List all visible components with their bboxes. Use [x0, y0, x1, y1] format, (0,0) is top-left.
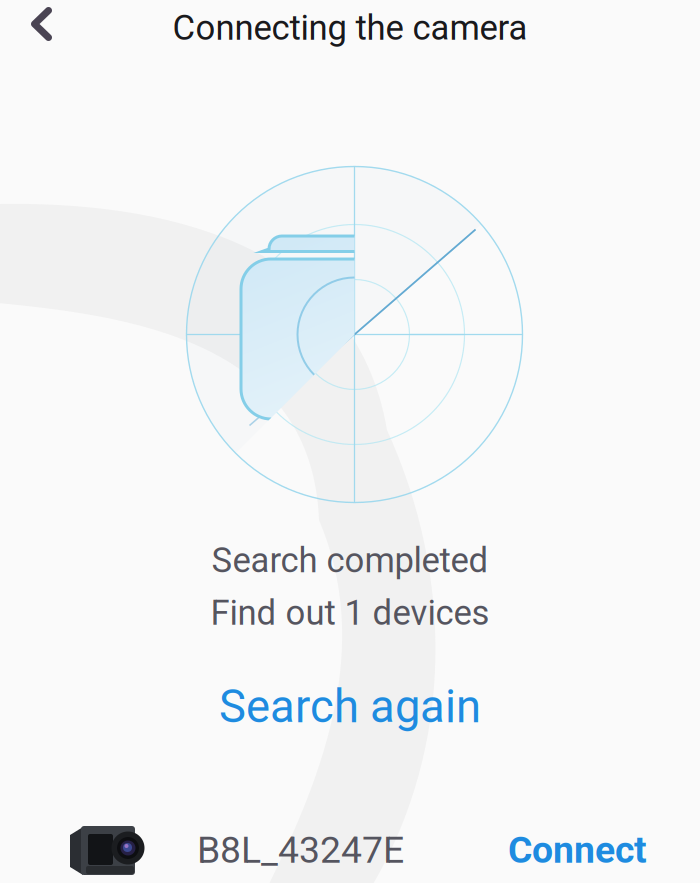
staticText: Connecting the camera [172, 8, 527, 48]
button[interactable]: Search again [195, 633, 505, 747]
staticText: Connect [508, 828, 647, 872]
staticText: Search again [219, 680, 481, 733]
staticText: Search completed [211, 540, 488, 581]
staticText: Find out 1 devices [210, 593, 489, 633]
staticText: B8L_43247E [197, 828, 404, 872]
button[interactable]: Back [0, 5, 66, 51]
button[interactable]: Connect [508, 810, 700, 883]
